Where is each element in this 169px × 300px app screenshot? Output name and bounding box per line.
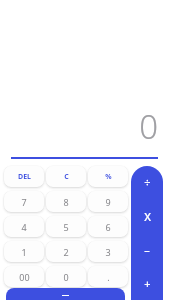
button[interactable]: Add — [131, 267, 163, 300]
staticText: 7 — [21, 196, 27, 208]
button[interactable]: 9 — [88, 191, 128, 212]
staticText: 0 — [63, 271, 69, 283]
staticText: DEL — [18, 172, 31, 182]
staticText: 3 — [105, 246, 111, 258]
button[interactable]: 8 — [46, 191, 86, 212]
staticText: 4 — [21, 221, 27, 233]
staticText: ÷ — [144, 175, 151, 190]
button[interactable]: Equals — [6, 288, 125, 300]
button[interactable]: Subtract — [131, 233, 163, 266]
staticText: – — [144, 242, 150, 257]
button[interactable]: 2 — [46, 241, 86, 262]
button[interactable]: 3 — [88, 241, 128, 262]
button[interactable]: Divide — [131, 166, 163, 199]
button[interactable]: 4 — [4, 216, 44, 237]
button[interactable]: 1 — [4, 241, 44, 262]
staticText: 00 — [19, 271, 30, 283]
staticText: + — [144, 276, 151, 291]
staticText: 9 — [105, 196, 111, 208]
button[interactable]: 7 — [4, 191, 44, 212]
staticText: 0 — [139, 104, 158, 149]
staticText: C — [64, 172, 69, 182]
staticText: . — [107, 271, 110, 283]
staticText: 8 — [63, 196, 69, 208]
button[interactable]: C — [46, 166, 86, 187]
button[interactable]: 00 — [4, 266, 44, 287]
staticText: % — [105, 172, 112, 182]
staticText: 5 — [63, 221, 69, 233]
button[interactable]: 5 — [46, 216, 86, 237]
staticText: 1 — [21, 246, 27, 258]
button[interactable]: . — [88, 266, 128, 287]
button[interactable]: 6 — [88, 216, 128, 237]
button[interactable]: Multiply — [131, 200, 163, 233]
button[interactable]: DEL — [4, 166, 44, 187]
button[interactable]: 0 — [46, 266, 86, 287]
staticText: 2 — [63, 246, 69, 258]
staticText: 6 — [105, 221, 111, 233]
staticText: X — [144, 209, 151, 224]
button[interactable]: % — [88, 166, 128, 187]
